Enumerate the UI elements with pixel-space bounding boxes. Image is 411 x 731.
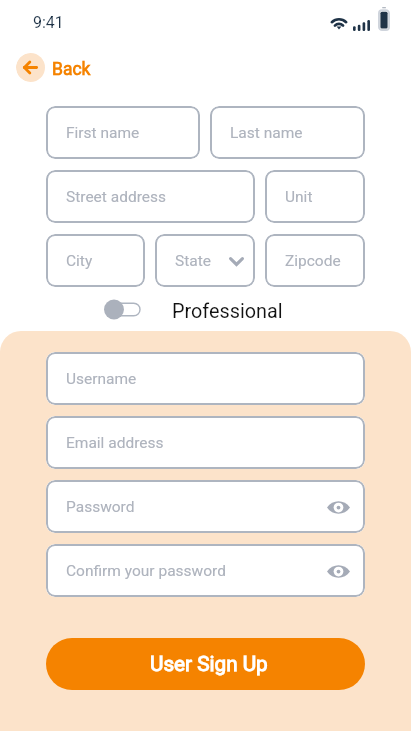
button[interactable]: Last name [210,106,365,159]
staticText: City [66,252,93,270]
staticText: Back [52,59,91,80]
staticText: Unit [285,188,313,206]
staticText: First name [66,124,140,142]
button[interactable]: City [46,234,145,287]
button[interactable]: Show password [324,493,352,521]
button[interactable]: State [155,234,255,287]
button[interactable]: Select state [223,248,249,274]
staticText: Confirm your password [66,562,226,580]
staticText: Password [66,498,135,516]
staticText: Zipcode [285,252,341,270]
staticText: User Sign Up [150,652,268,676]
button[interactable]: Show password [324,557,352,585]
staticText: State [175,252,211,270]
button[interactable]: First name [46,106,200,159]
button[interactable]: Confirm your password [46,544,365,597]
staticText: Email address [66,434,164,452]
button[interactable]: Street address [46,170,255,223]
button[interactable]: Email address [46,416,365,469]
button[interactable]: User Sign Up [46,638,365,690]
staticText: 9:41 [33,13,64,32]
button[interactable]: Password [46,480,365,533]
staticText: Professional [172,300,283,323]
button[interactable]: Zipcode [265,234,365,287]
button[interactable]: Username [46,352,365,405]
button[interactable]: Professional [104,299,140,320]
staticText: Street address [66,188,166,206]
staticText: Username [66,370,137,388]
staticText: Last name [230,124,303,142]
button[interactable]: Unit [265,170,365,223]
button[interactable]: Back [16,53,99,82]
